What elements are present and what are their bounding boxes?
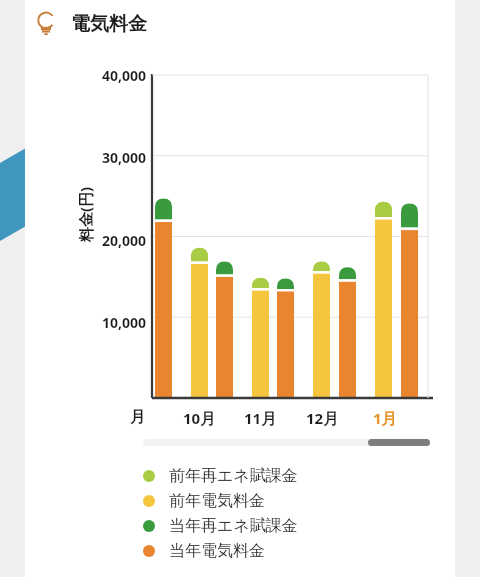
staticText: 11月 bbox=[244, 408, 277, 428]
staticText: 当年再エネ賦課金 bbox=[169, 516, 298, 536]
staticText: 20,000 bbox=[101, 231, 146, 250]
other: Previous page bbox=[0, 0, 480, 577]
staticText: 1月 bbox=[373, 408, 397, 428]
staticText: 当年電気料金 bbox=[169, 541, 265, 561]
staticText: 前年電気料金 bbox=[169, 491, 265, 511]
button[interactable]: 当年再エネ賦課金 bbox=[143, 513, 455, 538]
staticText: 料金(円) bbox=[75, 186, 95, 242]
staticText: 12月 bbox=[306, 408, 339, 428]
button[interactable]: Electricity bbox=[25, 0, 455, 48]
other: Electricity bbox=[33, 11, 59, 37]
staticText: 30,000 bbox=[101, 148, 146, 167]
staticText: 10,000 bbox=[101, 313, 146, 332]
staticText: 10月 bbox=[183, 408, 216, 428]
button[interactable]: 前年電気料金 bbox=[143, 488, 455, 513]
staticText: 月 bbox=[130, 408, 145, 427]
button[interactable]: Scroll chart bbox=[25, 433, 455, 451]
staticText: 40,000 bbox=[101, 66, 146, 85]
staticText: 電気料金 bbox=[71, 12, 147, 36]
button[interactable]: 当年電気料金 bbox=[143, 538, 455, 563]
button[interactable]: 前年再エネ賦課金 bbox=[143, 463, 455, 488]
staticText: 前年再エネ賦課金 bbox=[169, 466, 298, 486]
